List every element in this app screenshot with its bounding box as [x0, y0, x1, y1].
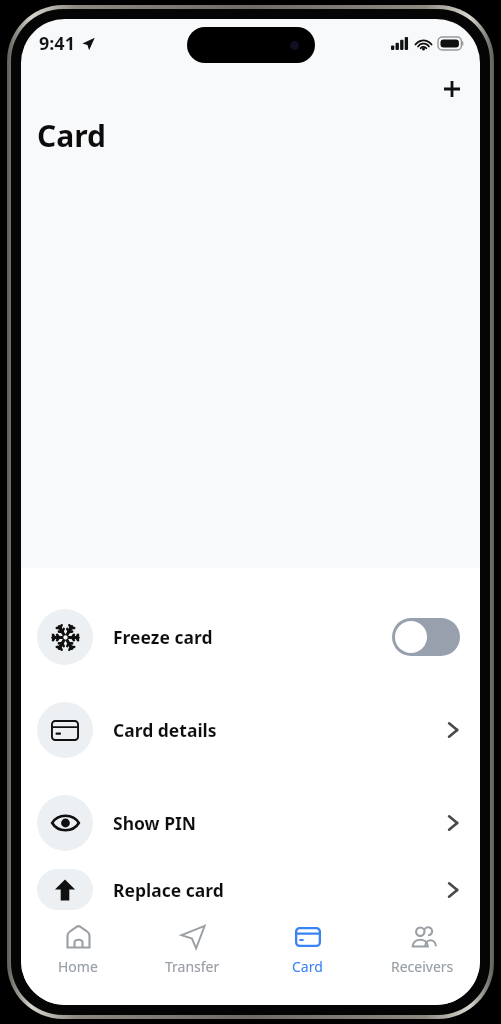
button[interactable]: Card details	[21, 683, 480, 776]
staticText: Home	[58, 957, 98, 976]
button[interactable]: Card	[250, 910, 365, 1005]
button[interactable]: Home	[21, 910, 135, 1005]
button[interactable]: Freeze card toggle	[392, 618, 460, 656]
staticText: Receivers	[391, 957, 454, 976]
staticText: Card	[37, 115, 106, 156]
button[interactable]: Freeze card	[21, 590, 480, 683]
button[interactable]: Add card	[430, 67, 474, 111]
button[interactable]: Receivers	[365, 910, 480, 1005]
button[interactable]: Transfer	[135, 910, 250, 1005]
staticText: Card	[292, 957, 323, 976]
button[interactable]: Replace card	[21, 869, 480, 910]
staticText: Card details	[113, 718, 217, 742]
button[interactable]: Show PIN	[21, 776, 480, 869]
staticText: Freeze card	[113, 625, 213, 649]
staticText: Show PIN	[113, 811, 197, 835]
staticText: Replace card	[113, 878, 224, 902]
staticText: 9:41	[39, 31, 75, 56]
staticText: Transfer	[165, 957, 220, 976]
